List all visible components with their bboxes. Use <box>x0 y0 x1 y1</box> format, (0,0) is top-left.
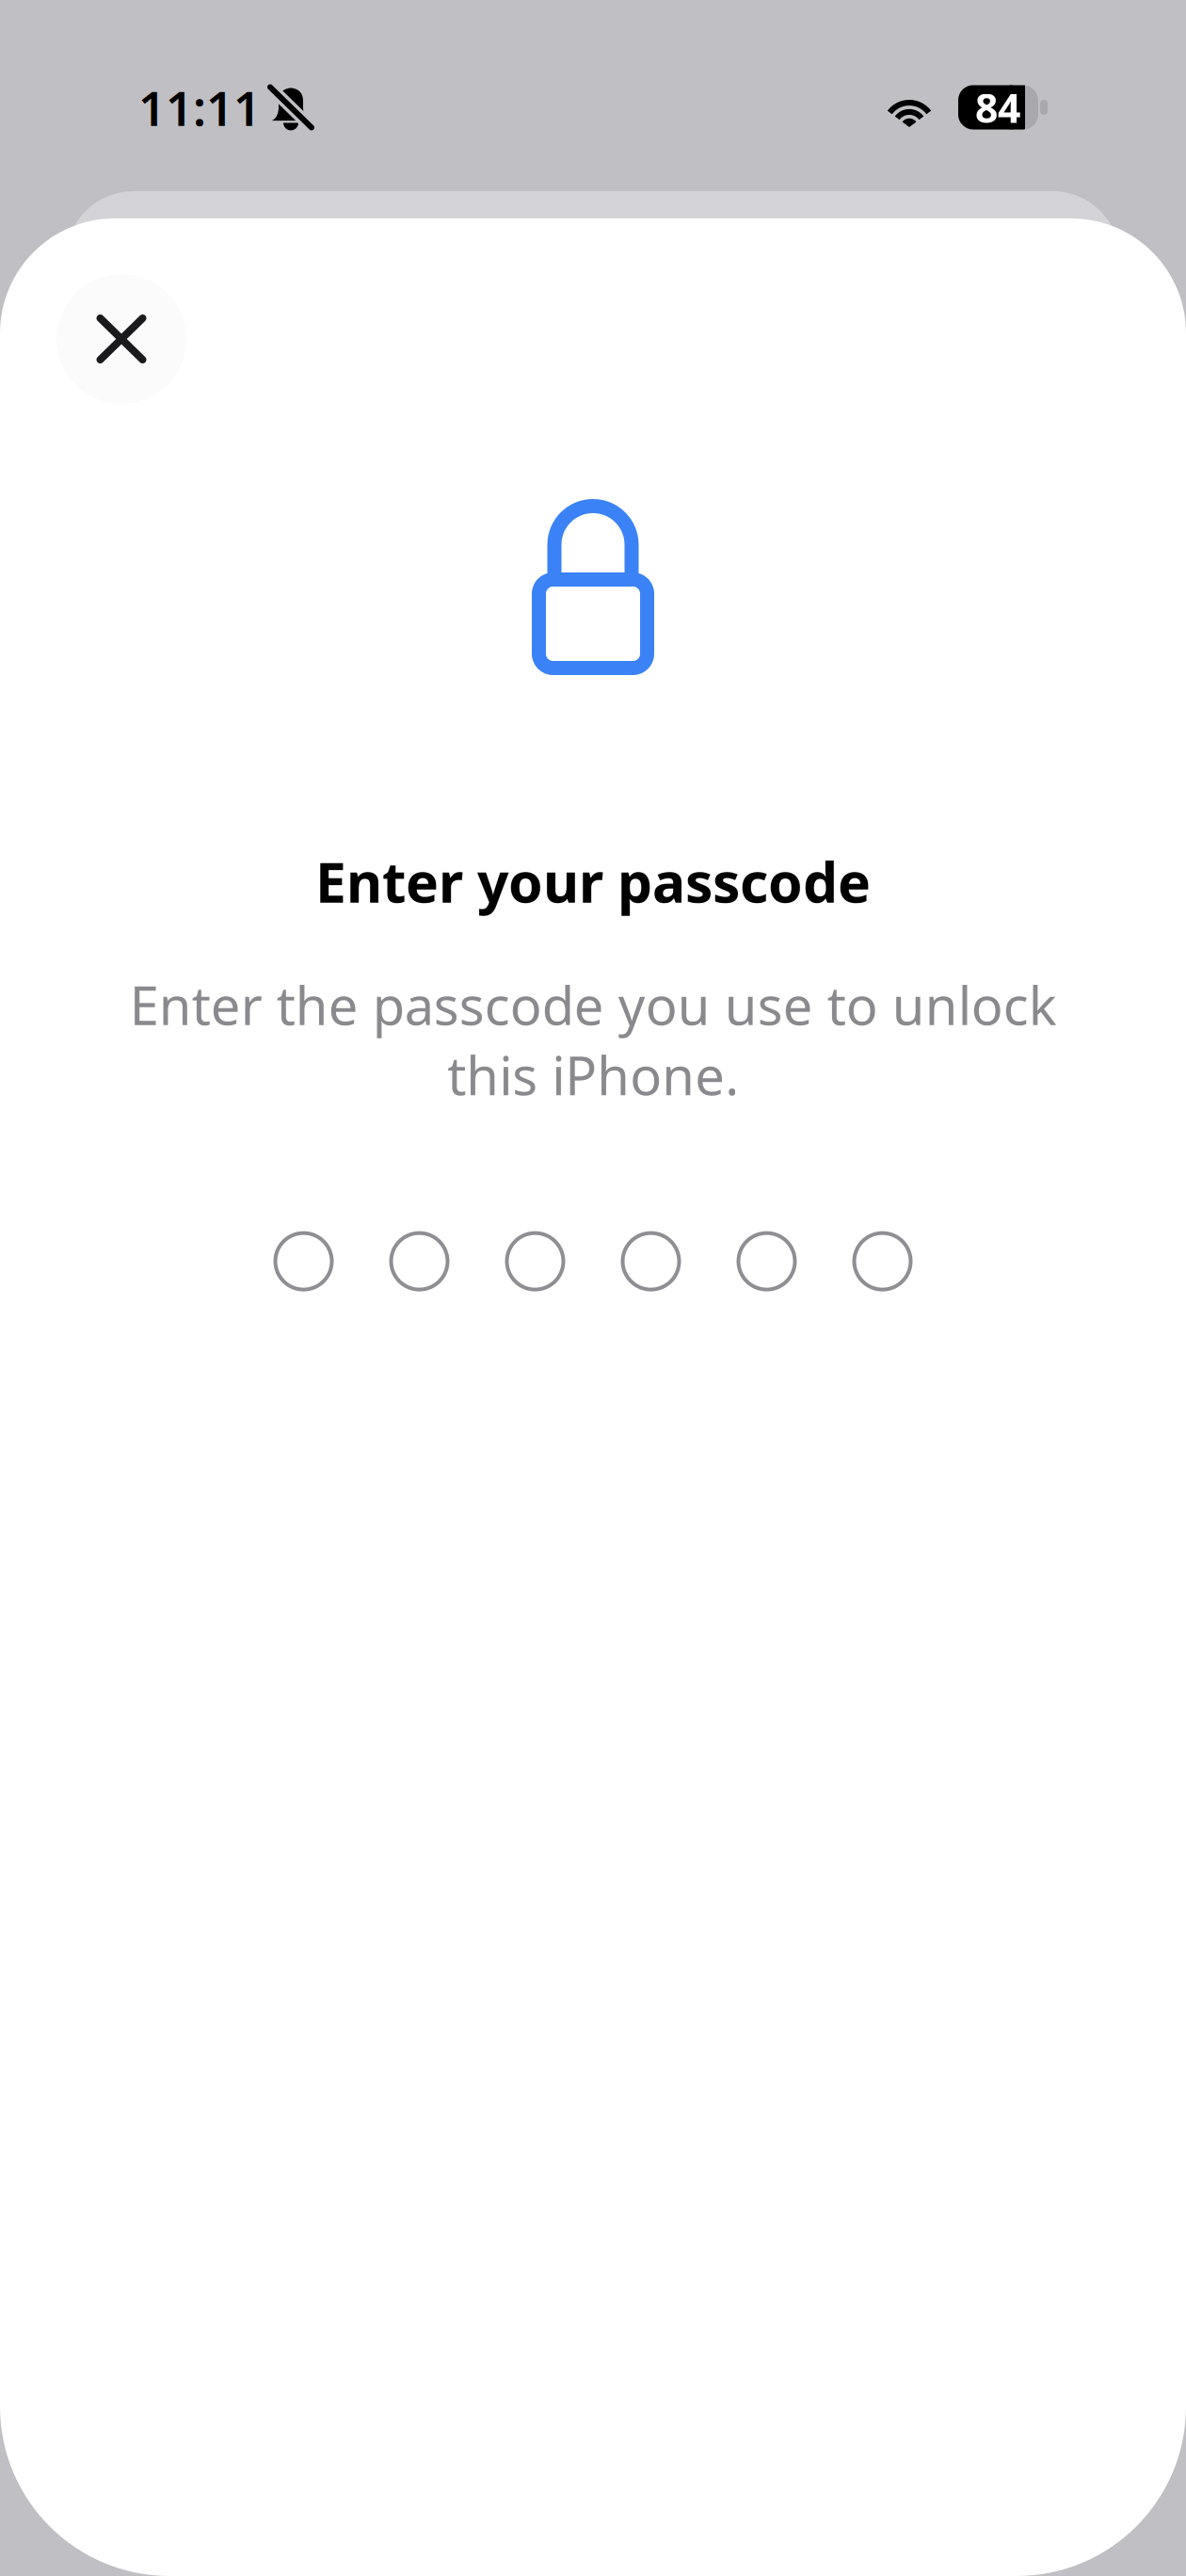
staticText: 84 <box>975 81 1020 134</box>
staticText: 11:11 <box>138 76 261 139</box>
button[interactable]: Passcode <box>275 1233 911 1290</box>
staticText: Enter the passcode you use to unlock thi… <box>129 970 1057 1110</box>
button[interactable]: Close <box>56 274 186 404</box>
staticText: Enter your passcode <box>315 845 871 918</box>
